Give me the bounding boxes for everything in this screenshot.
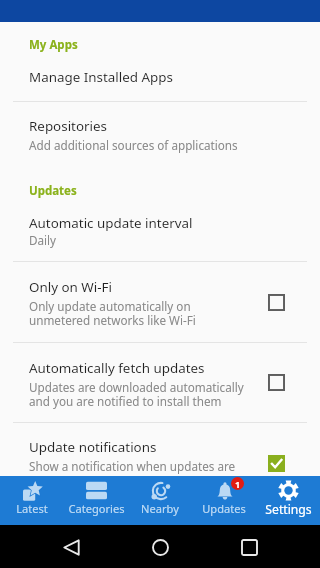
staticText: Settings: [265, 501, 312, 518]
staticText: Update notifications: [29, 438, 157, 456]
staticText: Daily: [29, 232, 57, 248]
staticText: Latest: [16, 501, 48, 516]
button[interactable]: Recent apps: [236, 534, 262, 560]
button[interactable]: Latest: [0, 476, 64, 525]
button[interactable]: Update notifications: [0, 423, 320, 476]
button[interactable]: Home: [147, 534, 173, 560]
staticText: Add additional sources of applications: [29, 137, 238, 153]
button[interactable]: Manage Installed Apps: [0, 57, 320, 101]
staticText: Only update automatically on unmetered n…: [29, 298, 196, 329]
button[interactable]: Only on Wi-Fi: [0, 262, 320, 342]
staticText: Repositories: [29, 117, 107, 135]
button[interactable]: Categories: [64, 476, 128, 525]
staticText: My Apps: [29, 37, 78, 53]
staticText: 1: [235, 478, 241, 490]
button[interactable]: Automatically fetch updates: [0, 343, 320, 422]
staticText: Categories: [68, 501, 125, 516]
button[interactable]: Back: [58, 534, 84, 560]
staticText: Updates: [202, 501, 246, 516]
staticText: Show a notification when updates are: [29, 458, 236, 474]
button[interactable]: Settings: [256, 476, 320, 525]
staticText: Automatically fetch updates: [29, 359, 205, 377]
staticText: Nearby: [141, 501, 179, 516]
staticText: Only on Wi-Fi: [29, 278, 112, 296]
staticText: Updates are downloaded automatically and…: [29, 379, 244, 410]
button[interactable]: Repositories: [0, 102, 320, 160]
staticText: Automatic update interval: [29, 214, 193, 232]
button[interactable]: Automatic update interval: [0, 205, 320, 261]
staticText: Manage Installed Apps: [29, 68, 173, 86]
button[interactable]: Nearby: [128, 476, 192, 525]
staticText: Updates: [29, 183, 77, 199]
button[interactable]: 1: [192, 476, 256, 525]
